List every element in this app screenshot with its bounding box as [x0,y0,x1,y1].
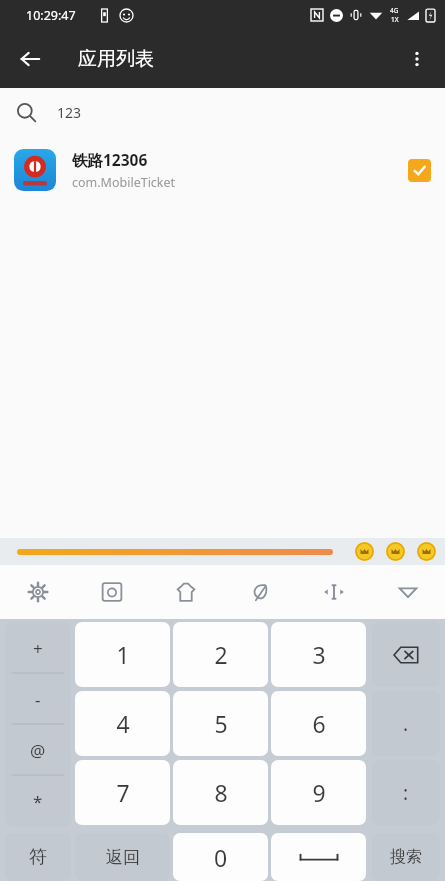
staticText: . [403,711,409,737]
button[interactable]: Cursor [297,565,371,619]
button[interactable]: 4 [75,691,170,756]
button[interactable]: . [372,691,440,756]
button[interactable]: - [5,674,71,725]
button[interactable]: * [5,776,71,827]
staticText: 铁路12306 [72,149,148,170]
staticText: 0 [214,842,228,873]
button[interactable]: Theme [149,565,223,619]
button[interactable]: Selected [408,159,431,182]
button[interactable]: Handwriting [223,565,297,619]
button[interactable]: 0 [173,833,268,881]
button[interactable]: 5 [173,691,268,756]
button[interactable]: 123 [0,88,445,136]
button[interactable]: Settings [0,565,75,619]
staticText: 返回 [106,847,140,868]
staticText: 1X [391,15,399,24]
staticText: 3 [312,639,326,670]
staticText: 6 [312,708,326,739]
staticText: 1 [116,639,130,670]
button[interactable]: 1 [75,622,170,687]
button[interactable]: Space [271,833,366,881]
button[interactable]: 铁路12306 [0,136,445,204]
button[interactable]: @ [5,725,71,776]
staticText: - [35,688,41,711]
staticText: 应用列表 [78,47,154,71]
button[interactable]: 8 [173,760,268,825]
button[interactable]: Coin [386,542,405,561]
staticText: 搜索 [390,847,422,867]
button[interactable]: 6 [271,691,366,756]
staticText: 8 [214,777,228,808]
staticText: + [33,637,43,660]
staticText: 2 [214,639,228,670]
staticText: 4G [390,6,399,15]
staticText: 5 [214,708,228,739]
staticText: 4 [116,708,130,739]
button[interactable]: : [372,760,440,825]
button[interactable]: Hide keyboard [371,565,445,619]
button[interactable]: Back [8,37,52,81]
staticText: 10:29:47 [26,7,76,24]
button[interactable]: 9 [271,760,366,825]
button[interactable]: 7 [75,760,170,825]
button[interactable]: 3 [271,622,366,687]
staticText: * [33,790,43,813]
staticText: 9 [312,777,326,808]
staticText: : [403,780,409,806]
button[interactable]: 返回 [75,833,170,881]
button[interactable]: 2 [173,622,268,687]
button[interactable]: Clipboard [75,565,149,619]
button[interactable]: Backspace [372,622,440,687]
staticText: com.MobileTicket [72,174,176,191]
button[interactable]: 符 [5,833,71,881]
staticText: 123 [57,103,82,122]
staticText: @ [30,739,46,762]
button[interactable]: Coin [355,542,374,561]
button[interactable]: Coin [417,542,436,561]
button[interactable]: + [5,622,71,674]
button[interactable]: More options [395,37,439,81]
button[interactable]: 搜索 [372,833,440,881]
staticText: 7 [116,777,130,808]
staticText: 符 [29,846,47,869]
